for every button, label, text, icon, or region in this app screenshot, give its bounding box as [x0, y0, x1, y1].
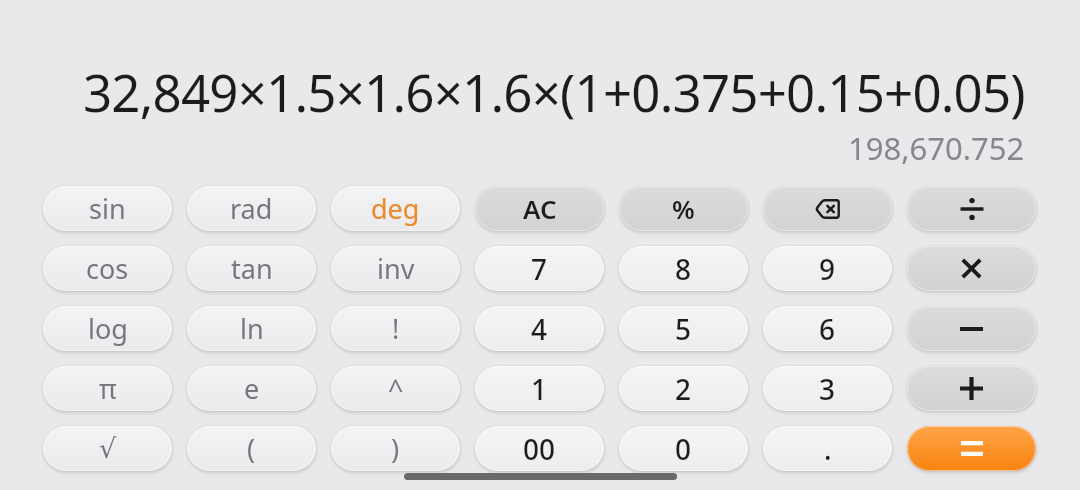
staticText: 00: [523, 430, 556, 468]
staticText: tan: [231, 250, 273, 287]
staticText: cos: [86, 250, 129, 287]
staticText: e: [244, 370, 260, 407]
button[interactable]: 6: [763, 306, 892, 351]
staticText: 32,849×1.5×1.6×1.6×(1+0.375+0.15+0.05): [83, 57, 1025, 126]
button[interactable]: 8: [619, 246, 748, 291]
button[interactable]: [907, 426, 1036, 471]
button[interactable]: cos: [43, 246, 172, 291]
button[interactable]: [907, 246, 1036, 291]
staticText: 4: [531, 310, 548, 348]
button[interactable]: π: [43, 366, 172, 411]
staticText: 1: [531, 370, 548, 408]
button[interactable]: 2: [619, 366, 748, 411]
button[interactable]: ln: [187, 306, 316, 351]
staticText: rad: [230, 190, 273, 227]
button[interactable]: log: [43, 306, 172, 351]
staticText: 2: [675, 370, 692, 408]
staticText: 6: [819, 310, 836, 348]
button[interactable]: [907, 306, 1036, 351]
button[interactable]: 4: [475, 306, 604, 351]
staticText: 8: [675, 250, 692, 288]
button[interactable]: √: [43, 426, 172, 471]
staticText: !: [392, 310, 400, 347]
button[interactable]: rad: [187, 186, 316, 231]
button[interactable]: 3: [763, 366, 892, 411]
staticText: AC: [523, 191, 557, 226]
button[interactable]: sin: [43, 186, 172, 231]
button[interactable]: e: [187, 366, 316, 411]
staticText: 3: [819, 370, 836, 408]
staticText: 0: [675, 430, 692, 468]
button[interactable]: 7: [475, 246, 604, 291]
button[interactable]: 00: [475, 426, 604, 471]
staticText: deg: [371, 190, 420, 227]
button[interactable]: ^: [331, 366, 460, 411]
button[interactable]: 5: [619, 306, 748, 351]
button[interactable]: 1: [475, 366, 604, 411]
button[interactable]: [907, 366, 1036, 411]
button[interactable]: 0: [619, 426, 748, 471]
staticText: 9: [819, 250, 836, 288]
staticText: ^: [388, 370, 404, 407]
staticText: √: [99, 433, 117, 464]
button[interactable]: AC: [475, 186, 604, 231]
staticText: 7: [531, 250, 548, 288]
button[interactable]: [763, 186, 892, 231]
staticText: π: [99, 370, 117, 407]
button[interactable]: !: [331, 306, 460, 351]
button[interactable]: ): [331, 426, 460, 471]
staticText: sin: [89, 190, 126, 227]
button[interactable]: %: [619, 186, 748, 231]
staticText: .: [824, 430, 832, 468]
staticText: inv: [377, 250, 415, 287]
staticText: (: [247, 430, 256, 467]
staticText: 5: [675, 310, 692, 348]
staticText: ): [391, 430, 400, 467]
button[interactable]: inv: [331, 246, 460, 291]
staticText: ln: [240, 310, 264, 347]
button[interactable]: [907, 186, 1036, 231]
button[interactable]: .: [763, 426, 892, 471]
button[interactable]: 9: [763, 246, 892, 291]
staticText: log: [88, 310, 128, 347]
button[interactable]: (: [187, 426, 316, 471]
staticText: 198,670.752: [848, 127, 1025, 169]
button[interactable]: deg: [331, 186, 460, 231]
staticText: %: [672, 191, 695, 226]
button[interactable]: tan: [187, 246, 316, 291]
